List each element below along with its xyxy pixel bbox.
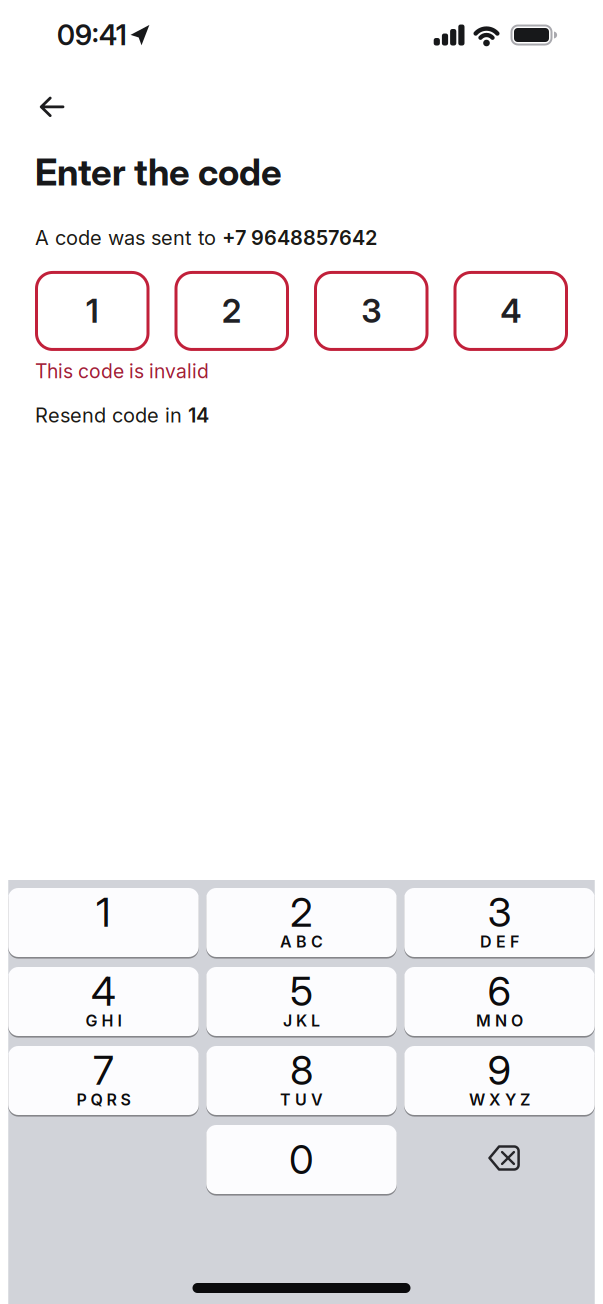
button[interactable]: Delete xyxy=(404,1125,595,1194)
staticText: 4 xyxy=(500,291,521,331)
staticText: 6 xyxy=(487,967,511,1015)
button[interactable]: 2 xyxy=(206,888,397,957)
button[interactable]: 3 xyxy=(404,888,595,957)
staticText: Resend code in 14 xyxy=(35,403,209,427)
staticText: 1 xyxy=(86,291,99,331)
staticText: 4 xyxy=(91,967,116,1015)
button[interactable]: 1 xyxy=(8,888,199,957)
staticText: A B C xyxy=(280,932,323,951)
staticText: This code is invalid xyxy=(35,359,209,383)
button[interactable]: 0 xyxy=(206,1125,397,1194)
staticText: J K L xyxy=(283,1011,320,1030)
staticText: 7 xyxy=(93,1046,114,1094)
staticText: 3 xyxy=(487,888,511,936)
button[interactable]: 5 xyxy=(206,967,397,1036)
staticText: 2 xyxy=(290,888,313,936)
button[interactable]: 6 xyxy=(404,967,595,1036)
staticText: 5 xyxy=(290,967,313,1015)
button[interactable]: 7 xyxy=(8,1046,199,1115)
staticText: D E F xyxy=(480,932,519,951)
button[interactable]: Back xyxy=(40,97,80,117)
button[interactable]: 9 xyxy=(404,1046,595,1115)
staticText: 09:41 xyxy=(57,18,127,52)
staticText: T U V xyxy=(280,1090,323,1109)
staticText: 0 xyxy=(289,1135,314,1184)
staticText: P Q R S xyxy=(76,1090,130,1109)
staticText: G H I xyxy=(85,1011,121,1030)
button[interactable]: 4 xyxy=(8,967,199,1036)
staticText: 9 xyxy=(487,1046,511,1094)
button[interactable]: 8 xyxy=(206,1046,397,1115)
staticText: 2 xyxy=(222,291,242,331)
staticText: 8 xyxy=(290,1046,313,1094)
staticText: W X Y Z xyxy=(469,1090,530,1109)
staticText: 3 xyxy=(361,291,381,331)
staticText: A code was sent to +7 9648857642 xyxy=(35,226,377,249)
staticText: 1 xyxy=(96,888,111,936)
staticText: M N O xyxy=(476,1011,523,1030)
staticText: Enter the code xyxy=(35,150,282,194)
